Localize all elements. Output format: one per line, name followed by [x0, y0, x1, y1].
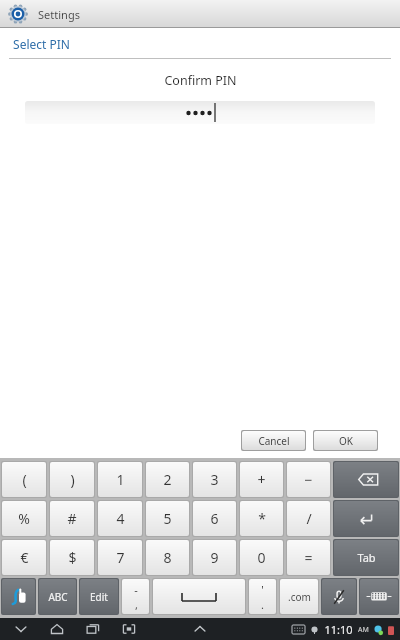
staticText: -	[134, 582, 138, 597]
button[interactable]: Home	[46, 618, 68, 640]
button[interactable]: %	[2, 501, 46, 536]
staticText: +	[257, 470, 266, 489]
staticText: Settings	[38, 7, 80, 22]
staticText: #	[67, 509, 77, 528]
staticText: $	[68, 548, 77, 567]
button[interactable]: )	[50, 462, 94, 497]
button[interactable]: ABC	[39, 579, 76, 614]
button[interactable]: Backspace	[334, 462, 398, 497]
button[interactable]: /	[287, 501, 330, 536]
staticText: Edit	[90, 590, 108, 604]
staticText: Select PIN	[13, 36, 70, 52]
button[interactable]: Back	[10, 618, 32, 640]
button[interactable]: '	[249, 579, 276, 614]
staticText: 6	[210, 509, 219, 528]
button[interactable]: 0	[240, 540, 283, 575]
staticText: .com	[288, 590, 311, 604]
button[interactable]: Switch keyboard	[360, 579, 398, 614]
button[interactable]: Voice input	[322, 579, 356, 614]
staticText: 9	[210, 548, 219, 567]
staticText: Confirm PIN	[164, 72, 237, 89]
staticText: =	[304, 548, 313, 567]
button[interactable]: #	[50, 501, 94, 536]
button[interactable]: Recents	[82, 618, 104, 640]
button[interactable]: €	[2, 540, 46, 575]
staticText: /	[306, 509, 312, 528]
button[interactable]: 2	[146, 462, 189, 497]
button[interactable]: Edit	[80, 579, 118, 614]
staticText: 1	[116, 470, 125, 489]
button[interactable]: Cancel	[242, 431, 305, 450]
button[interactable]: 1	[98, 462, 142, 497]
staticText: −	[304, 470, 313, 489]
button[interactable]: Screenshot	[118, 618, 140, 640]
staticText: 3	[210, 470, 219, 489]
button[interactable]: +	[240, 462, 283, 497]
button[interactable]: OK	[314, 431, 377, 450]
staticText: OK	[339, 434, 353, 448]
staticText: '	[261, 582, 264, 597]
staticText: 2	[163, 470, 172, 489]
staticText: 8	[163, 548, 172, 567]
staticText: 4	[116, 509, 125, 528]
staticText: ,	[135, 597, 138, 612]
staticText: )	[70, 470, 75, 489]
staticText: 0	[257, 548, 266, 567]
staticText: .	[261, 597, 264, 612]
staticText: 11:10	[324, 622, 353, 637]
button[interactable]: Space	[153, 579, 245, 614]
button[interactable]: Handwriting input	[2, 579, 35, 614]
staticText: 5	[163, 509, 172, 528]
button[interactable]: 4	[98, 501, 142, 536]
button[interactable]: 5	[146, 501, 189, 536]
button[interactable]: =	[287, 540, 330, 575]
staticText: *	[258, 509, 266, 528]
staticText: 7	[116, 548, 125, 567]
button[interactable]: 9	[193, 540, 236, 575]
button[interactable]: .com	[280, 579, 318, 614]
button[interactable]: *	[240, 501, 283, 536]
button[interactable]: $	[50, 540, 94, 575]
button[interactable]: 8	[146, 540, 189, 575]
button[interactable]: −	[287, 462, 330, 497]
button[interactable]: Tab	[334, 540, 398, 575]
button[interactable]	[25, 101, 375, 124]
button[interactable]: Enter	[334, 501, 398, 536]
staticText: ABC	[48, 590, 68, 604]
staticText: Tab	[357, 550, 376, 565]
button[interactable]: -	[122, 579, 149, 614]
staticText: (	[22, 470, 27, 489]
staticText: %	[18, 509, 30, 528]
staticText: AM	[358, 625, 369, 635]
button[interactable]: 6	[193, 501, 236, 536]
staticText: Cancel	[258, 434, 290, 448]
staticText: €	[20, 548, 29, 567]
button[interactable]: 3	[193, 462, 236, 497]
button[interactable]: 7	[98, 540, 142, 575]
button[interactable]: (	[2, 462, 46, 497]
